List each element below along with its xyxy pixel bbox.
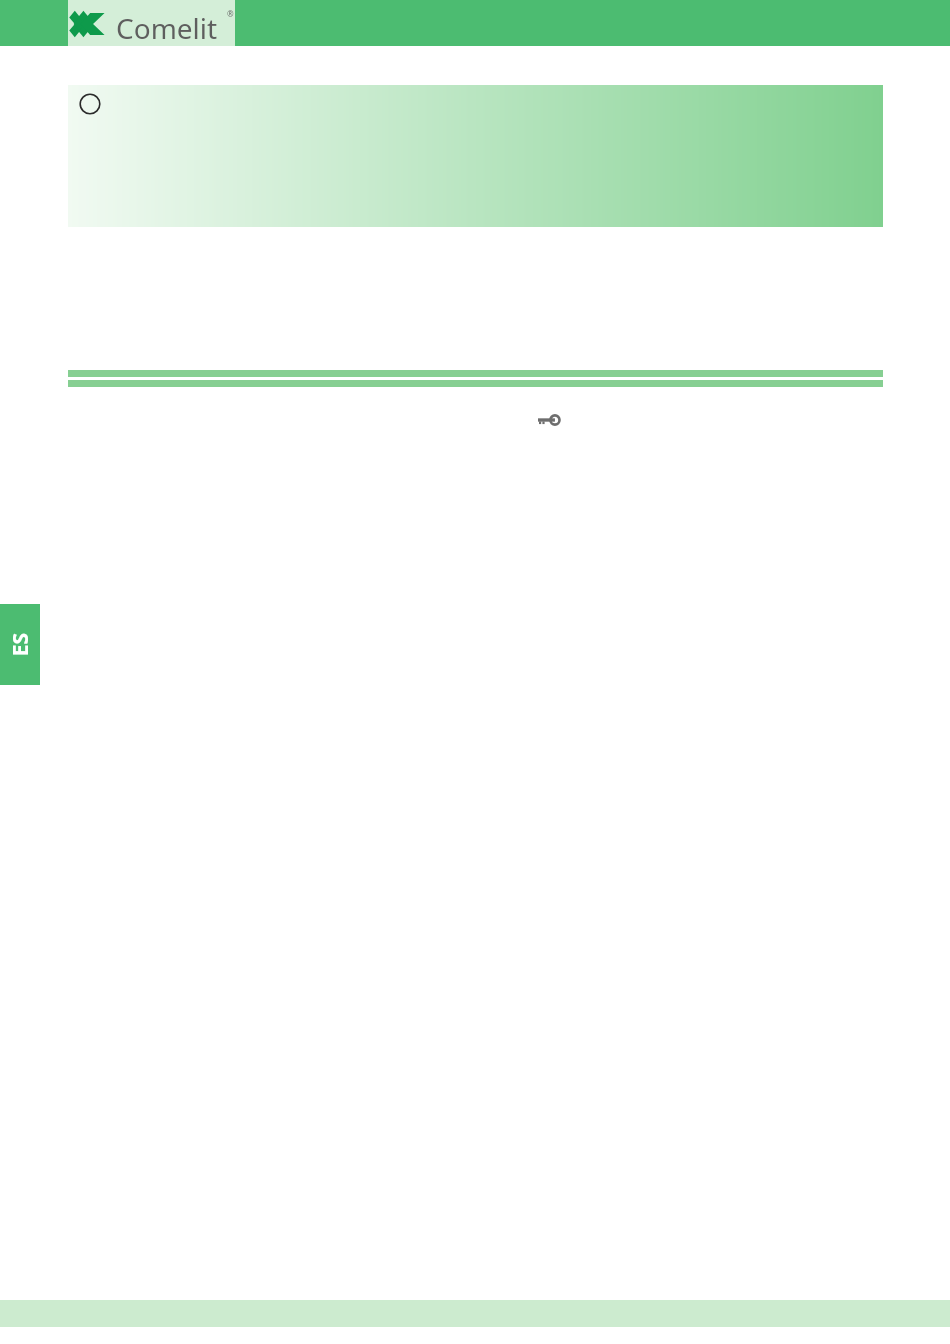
staticText: ES (5, 632, 34, 656)
staticText: ® (227, 8, 234, 19)
button[interactable]: Comelit logo (68, 0, 235, 46)
button[interactable]: ES (0, 604, 40, 685)
staticText: Comelit (116, 9, 218, 47)
button[interactable]: Step marker (68, 85, 883, 227)
button[interactable]: Key (537, 412, 561, 428)
other: Step marker (79, 93, 101, 115)
